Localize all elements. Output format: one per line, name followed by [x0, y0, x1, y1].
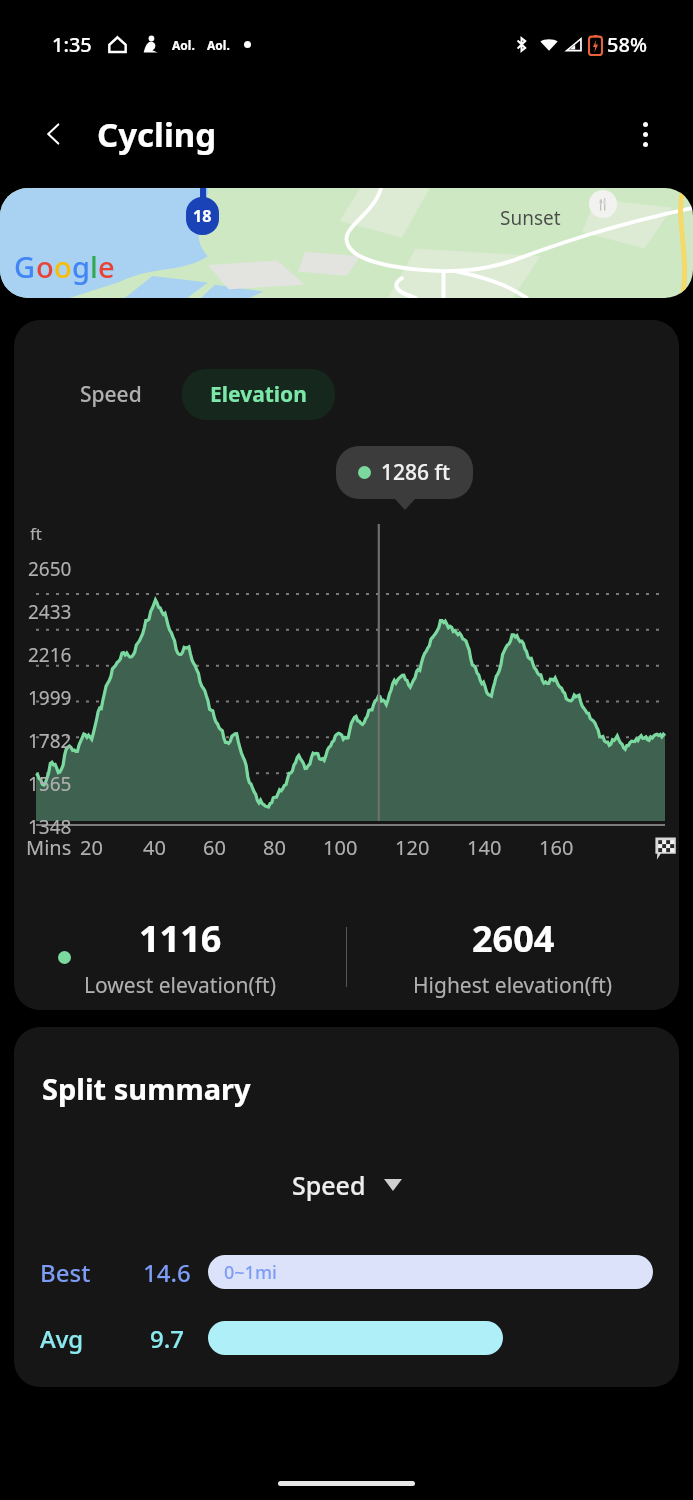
button[interactable]: Best [14, 1250, 679, 1294]
staticText: Split summary [42, 1069, 251, 1108]
staticText: 1565 [28, 771, 72, 797]
button[interactable]: Speed [280, 1162, 414, 1208]
staticText: 100 [323, 834, 358, 861]
button[interactable]: Avg [14, 1316, 679, 1360]
staticText: G [14, 247, 36, 286]
staticText: 140 [467, 834, 502, 861]
staticText: o [54, 247, 72, 286]
staticText: 2650 [28, 556, 72, 582]
staticText: Speed [80, 380, 142, 409]
button[interactable]: Elevation [182, 369, 335, 420]
staticText: e [98, 247, 115, 286]
staticText: 1999 [28, 685, 72, 711]
staticText: Sunset [500, 205, 561, 231]
staticText: o [36, 247, 54, 286]
staticText: Mins [26, 834, 72, 861]
staticText: 160 [539, 834, 574, 861]
staticText: 40 [143, 834, 166, 861]
staticText: Aol. [172, 37, 195, 53]
staticText: 80 [263, 834, 286, 861]
staticText: l [90, 247, 98, 286]
staticText: 1348 [28, 814, 72, 840]
staticText: Highest elevation(ft) [413, 971, 613, 1000]
staticText: 1782 [28, 728, 72, 754]
staticText: 120 [395, 834, 430, 861]
staticText: g [72, 247, 90, 286]
button[interactable]: Route map [0, 188, 693, 298]
staticText: 14.6 [143, 1256, 191, 1289]
staticText: Elevation [210, 380, 307, 409]
staticText: Speed [292, 1168, 366, 1202]
button[interactable]: Back [30, 110, 78, 158]
staticText: 2216 [28, 642, 72, 668]
staticText: ft [30, 522, 42, 545]
staticText: Best [40, 1256, 91, 1289]
staticText: 9.7 [150, 1322, 184, 1355]
staticText: 1116 [139, 914, 222, 963]
staticText: Aol. [207, 37, 230, 53]
staticText: 1286 ft [381, 458, 451, 487]
staticText: 60 [203, 834, 226, 861]
staticText: Cycling [97, 112, 217, 157]
staticText: 58% [607, 31, 647, 58]
staticText: 2604 [472, 914, 555, 963]
staticText: 0~1mi [224, 1260, 277, 1285]
staticText: 20 [80, 834, 103, 861]
staticText: Lowest elevation(ft) [84, 971, 276, 1000]
staticText: 18 [193, 205, 212, 227]
staticText: 1:35 [52, 31, 92, 58]
button[interactable]: Speed [60, 369, 162, 420]
staticText: 2433 [28, 599, 72, 625]
staticText: Avg [40, 1322, 84, 1355]
button[interactable]: More options [621, 110, 669, 158]
staticText: 🍴 [596, 198, 610, 211]
